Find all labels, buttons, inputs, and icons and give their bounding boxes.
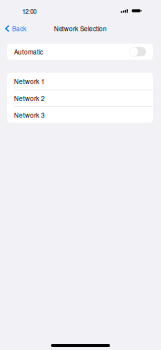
staticText: Network 1 [14, 77, 45, 86]
button[interactable]: Network 1 [7, 73, 153, 90]
button[interactable]: Back [0, 21, 30, 36]
staticText: 12:00 [22, 7, 36, 16]
button[interactable]: Automatic [7, 44, 153, 60]
staticText: Automatic [14, 47, 43, 56]
button[interactable]: Network 3 [7, 107, 153, 123]
staticText: Network Selection [54, 24, 107, 33]
staticText: Back [12, 24, 26, 33]
staticText: Network 3 [14, 110, 45, 120]
button[interactable]: Network 2 [7, 90, 153, 106]
staticText: Network 2 [14, 94, 45, 103]
